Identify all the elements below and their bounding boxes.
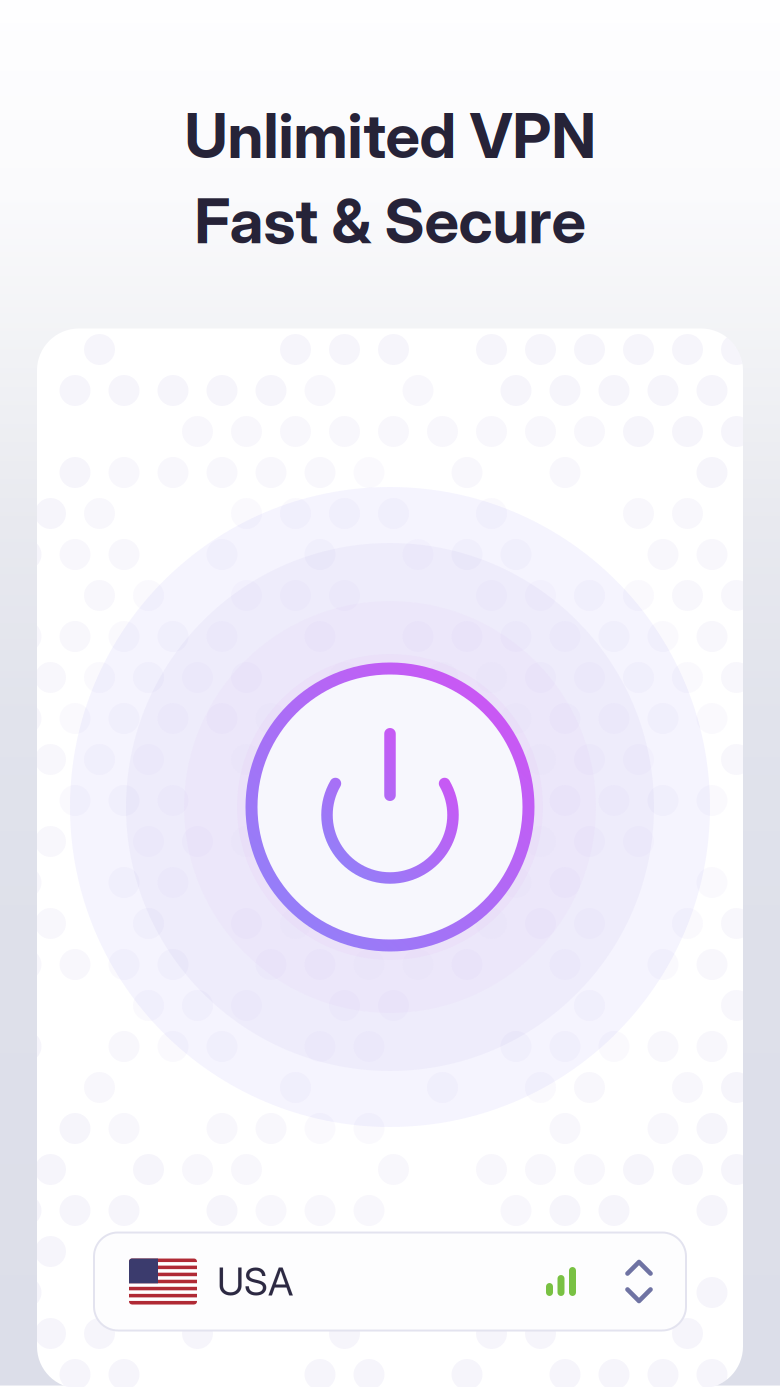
staticText: Unlimited VPN: [184, 98, 595, 173]
staticText: Fast & Secure: [194, 184, 585, 258]
staticText: USA: [217, 1258, 293, 1305]
button[interactable]: USA: [94, 1232, 686, 1330]
